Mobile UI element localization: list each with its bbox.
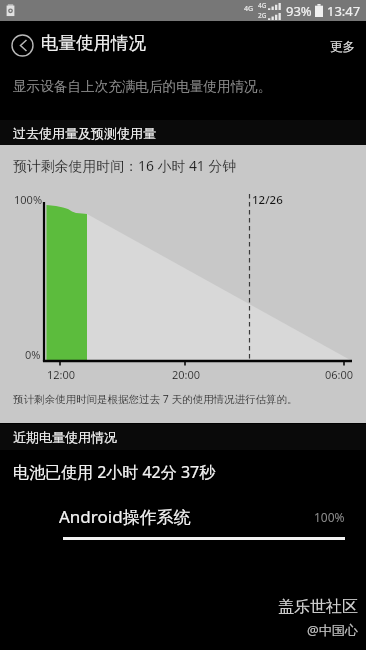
staticText: 06:00 xyxy=(325,367,354,382)
button[interactable]: 更多 xyxy=(316,27,366,67)
staticText: 93% xyxy=(286,2,312,20)
staticText: 预计剩余使用时间是根据您过去 7 天的使用情况进行估算的。 xyxy=(13,392,298,406)
staticText: 4G xyxy=(258,1,267,10)
staticText: 100% xyxy=(314,509,345,525)
staticText: 20:00 xyxy=(172,367,201,382)
staticText: 显示设备自上次充满电后的电量使用情况。 xyxy=(13,78,272,95)
staticText: 盖乐世社区 xyxy=(278,597,358,617)
staticText: 更多 xyxy=(330,39,355,55)
button[interactable]: Android操作系统 xyxy=(0,497,366,549)
staticText: Android操作系统 xyxy=(59,505,191,528)
staticText: @中国心 xyxy=(307,621,358,639)
staticText: 电池已使用 2小时 42分 37秒 xyxy=(13,461,216,483)
staticText: 100% xyxy=(14,192,43,207)
staticText: 0% xyxy=(25,347,41,362)
staticText: 电量使用情况 xyxy=(41,32,146,54)
staticText: 过去使用量及预测使用量 xyxy=(13,125,156,141)
staticText: 12:00 xyxy=(47,367,76,382)
staticText: 4G xyxy=(244,4,254,14)
staticText: 12/26 xyxy=(252,192,283,208)
staticText: 预计剩余使用时间：16 小时 41 分钟 xyxy=(13,156,237,175)
staticText: 2G xyxy=(258,11,267,20)
staticText: 13:47 xyxy=(327,2,361,20)
staticText: 近期电量使用情况 xyxy=(13,429,117,445)
button[interactable]: Back xyxy=(0,24,44,67)
